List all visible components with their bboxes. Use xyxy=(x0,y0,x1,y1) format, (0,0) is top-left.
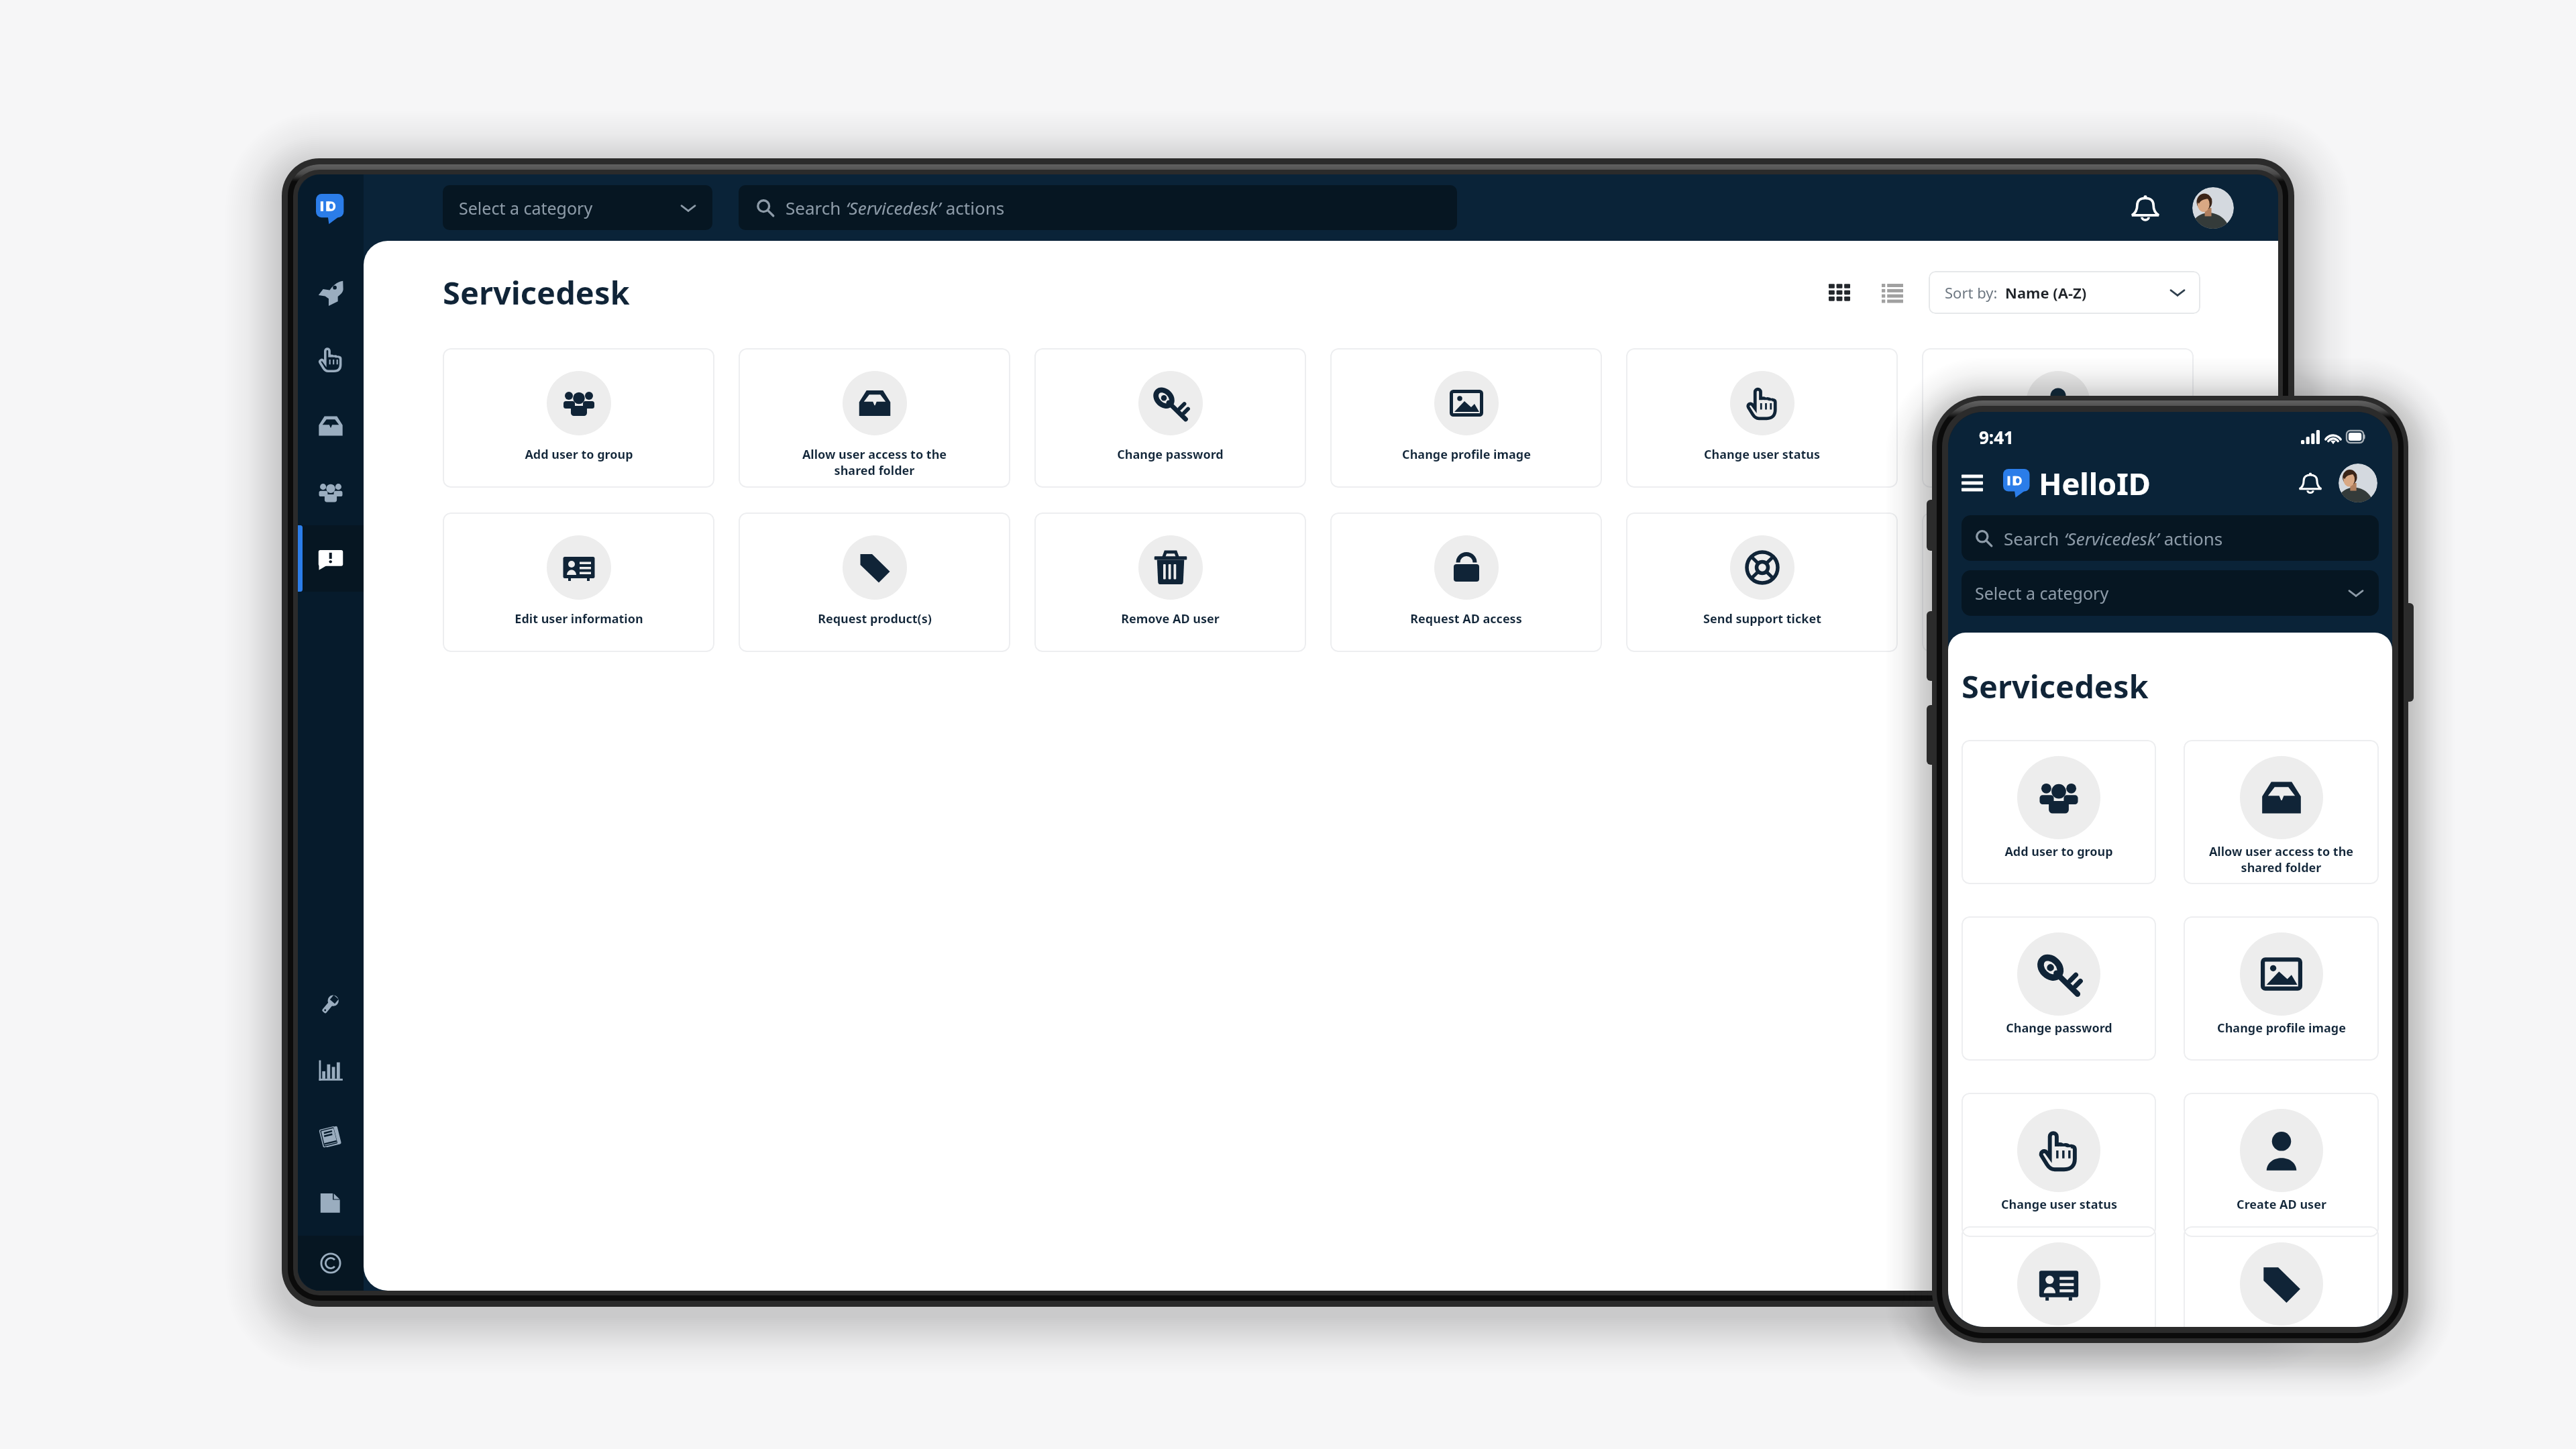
button[interactable]: Search xyxy=(1962,515,2379,561)
staticText: Request AD access xyxy=(1410,610,1522,627)
staticText: Servicedesk xyxy=(443,271,630,314)
staticText: Name (A-Z) xyxy=(2005,282,2087,303)
button[interactable]: Remove AD user xyxy=(1034,513,1306,652)
button[interactable]: Allow user access to the shared folder xyxy=(2184,740,2379,884)
staticText: Change user status xyxy=(1704,446,1820,463)
button[interactable]: Select a category xyxy=(443,185,712,230)
button[interactable]: Notifications xyxy=(2298,471,2322,495)
button[interactable]: Request product(s) xyxy=(739,513,1010,652)
button[interactable]: Change user status xyxy=(1962,1093,2156,1237)
staticText: Change profile image xyxy=(1402,446,1531,463)
staticText: ‘Servicedesk’ xyxy=(2064,527,2159,550)
button[interactable]: Request AD access xyxy=(1330,513,1602,652)
button[interactable]: Menu xyxy=(1962,472,1983,494)
button[interactable]: Sort by: xyxy=(1929,271,2200,314)
staticText: Select a category xyxy=(459,197,593,219)
staticText: actions xyxy=(2159,527,2223,550)
staticText: Create AD user xyxy=(2237,1196,2326,1213)
staticText: HelloID xyxy=(2039,463,2151,504)
staticText: 9:41 xyxy=(1979,425,2014,449)
button[interactable]: Change profile image xyxy=(2184,916,2379,1061)
staticText: Select a category xyxy=(1975,582,2109,604)
staticText: Servicedesk xyxy=(1962,665,2149,708)
button[interactable]: Create AD user xyxy=(1922,348,2194,488)
staticText: Search xyxy=(786,196,846,219)
staticText: Remove AD user xyxy=(1121,610,1220,627)
button[interactable]: Change profile image xyxy=(1330,348,1602,488)
staticText: Change password xyxy=(1117,446,1224,463)
staticText: Send support ticket xyxy=(1703,610,1821,627)
staticText: Edit user information xyxy=(515,610,643,627)
staticText: Change profile image xyxy=(2217,1020,2346,1036)
button[interactable]: Change password xyxy=(1962,916,2156,1061)
staticText: Add user to group xyxy=(525,446,633,463)
button[interactable]: Navigation item xyxy=(298,1036,364,1103)
button[interactable]: Allow user access to the shared folder xyxy=(739,348,1010,488)
button[interactable]: Notifications xyxy=(2131,193,2160,223)
button[interactable]: Navigation item xyxy=(298,392,364,459)
button[interactable]: Profile xyxy=(2192,187,2234,229)
button[interactable]: Select a category xyxy=(1962,570,2379,616)
button[interactable]: Edit user information xyxy=(443,513,714,652)
button[interactable]: Navigation item xyxy=(298,970,364,1036)
button[interactable]: Copyright xyxy=(298,1236,364,1291)
staticText: Search xyxy=(2004,527,2064,550)
staticText: ‘Servicedesk’ xyxy=(846,196,941,219)
button[interactable]: Navigation item xyxy=(298,1103,364,1169)
button[interactable]: Add user to group xyxy=(443,348,714,488)
staticText: actions xyxy=(941,196,1005,219)
button[interactable]: Create AD user xyxy=(1922,513,2194,652)
staticText: Change password xyxy=(2006,1020,2112,1036)
button[interactable]: Navigation item xyxy=(298,525,364,592)
button[interactable]: Send support ticket xyxy=(1626,513,1898,652)
button[interactable]: Navigation item xyxy=(298,260,364,326)
staticText: Add user to group xyxy=(2004,843,2113,860)
staticText: Request product(s) xyxy=(818,610,932,627)
staticText: Sort by: xyxy=(1945,282,2005,303)
button[interactable]: Search xyxy=(739,185,1457,230)
button[interactable]: Change user status xyxy=(1626,348,1898,488)
staticText: Allow user access to the shared folder xyxy=(796,446,953,478)
button[interactable]: Create AD user xyxy=(2184,1093,2379,1237)
button[interactable]: Navigation item xyxy=(298,1169,364,1236)
staticText: Allow user access to the shared folder xyxy=(2202,843,2360,875)
button[interactable]: Profile xyxy=(2339,464,2377,502)
button[interactable]: Navigation item xyxy=(298,459,364,525)
button[interactable]: Edit user information xyxy=(1962,1226,2156,1327)
button[interactable]: Change password xyxy=(1034,348,1306,488)
button[interactable]: List view xyxy=(1882,282,1903,303)
button[interactable]: Request product(s) xyxy=(2184,1226,2379,1327)
staticText: Create AD user xyxy=(2013,610,2103,627)
button[interactable]: Navigation item xyxy=(298,326,364,392)
button[interactable]: Grid view xyxy=(1829,282,1850,303)
staticText: Change user status xyxy=(2001,1196,2117,1213)
button[interactable]: Add user to group xyxy=(1962,740,2156,884)
